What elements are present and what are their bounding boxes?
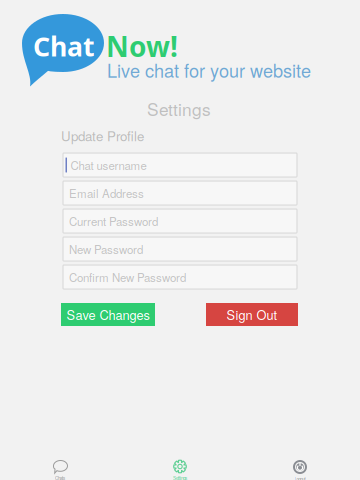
staticText: Live chat for your website [107, 57, 311, 83]
staticText: Chat username [70, 157, 146, 173]
button[interactable]: Logout [240, 460, 360, 480]
button[interactable]: Save Changes [61, 303, 155, 326]
button[interactable]: Chats [0, 460, 120, 480]
button[interactable]: Current Password [63, 209, 297, 233]
staticText: Current Password [69, 213, 158, 229]
staticText: Email Address [69, 185, 144, 201]
staticText: Confirm New Password [69, 269, 186, 285]
button[interactable]: Email Address [63, 181, 297, 205]
staticText: Settings [173, 475, 187, 480]
staticText: Logout [294, 476, 305, 480]
staticText: Chats [55, 475, 65, 480]
button[interactable]: Settings [120, 460, 240, 480]
staticText: Update Profile [61, 126, 144, 145]
staticText: Sign Out [226, 305, 277, 324]
staticText: New Password [69, 241, 143, 257]
staticText: Settings [147, 96, 211, 121]
button[interactable]: Confirm New Password [63, 265, 297, 289]
button[interactable]: Sign Out [206, 303, 298, 326]
staticText: Save Changes [66, 305, 149, 324]
button[interactable]: Chat username [63, 153, 297, 177]
button[interactable]: New Password [63, 237, 297, 261]
staticText: Now! [106, 27, 178, 65]
staticText: Chat [33, 28, 95, 64]
